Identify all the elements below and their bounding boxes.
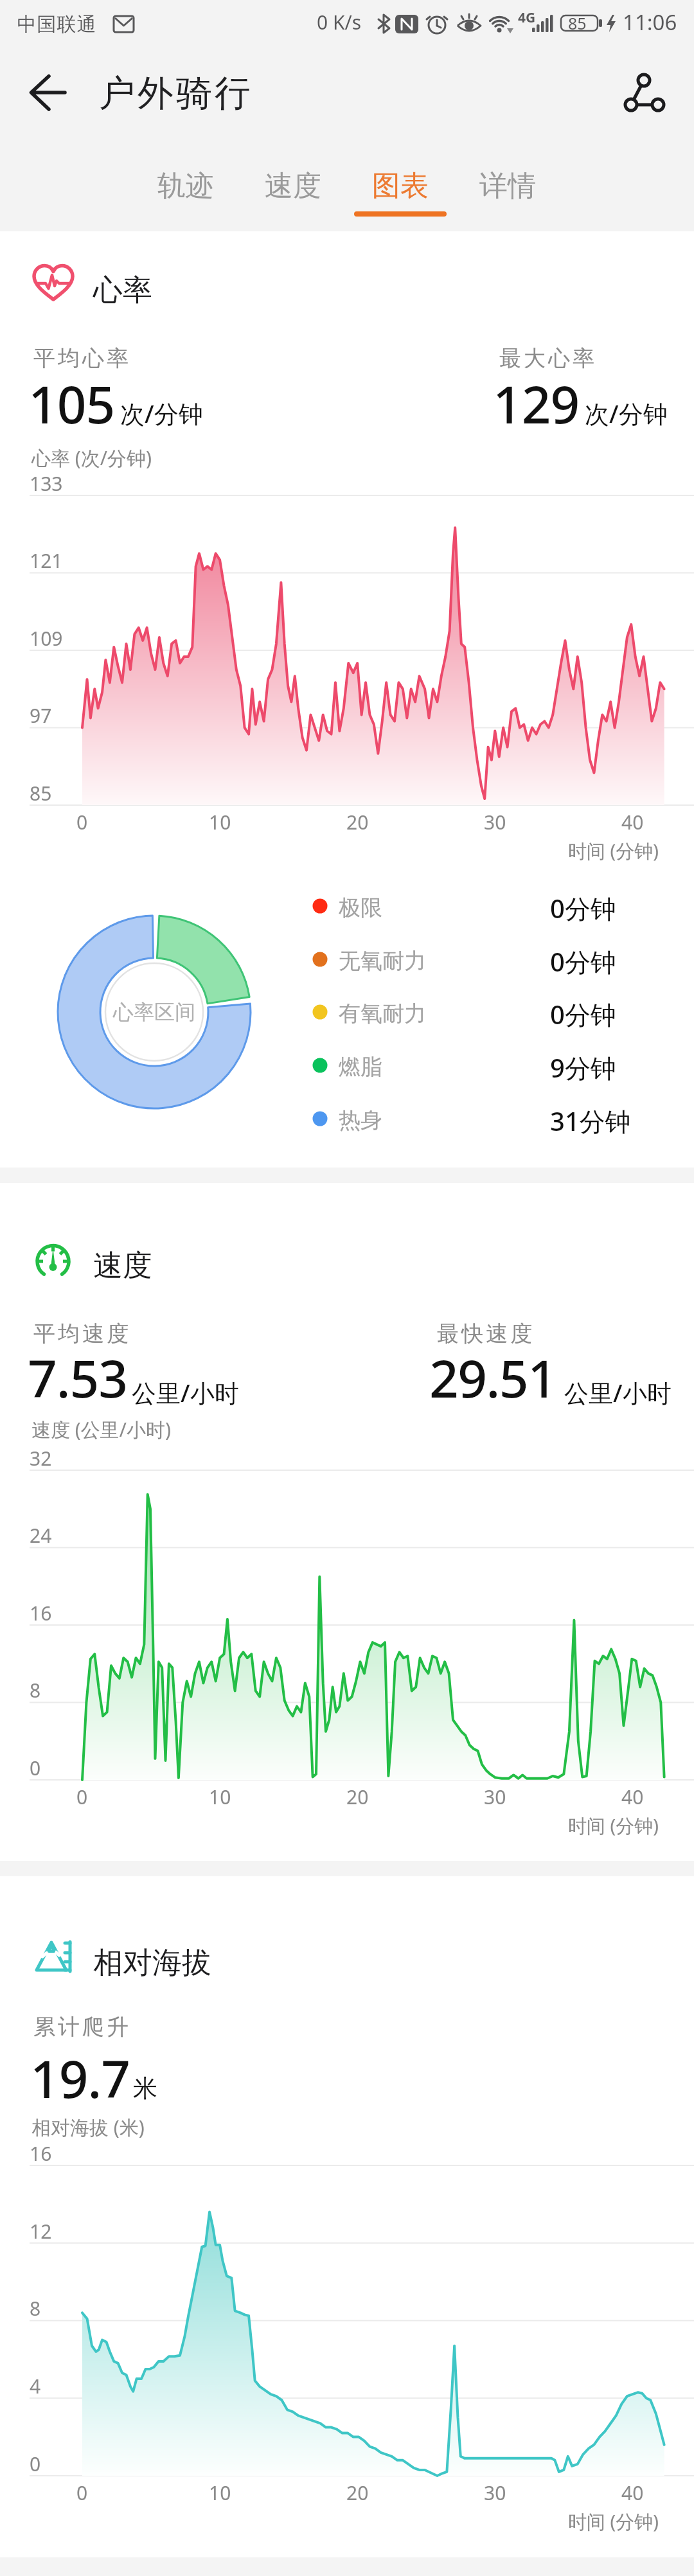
staticText: 0 (76, 809, 88, 835)
staticText: 10 (209, 809, 231, 835)
staticText: 31分钟 (550, 1103, 631, 1139)
staticText: 时间 (分钟) (568, 2509, 659, 2534)
staticText: 心率区间 (113, 999, 195, 1025)
staticText: 相对海拔 (93, 1944, 211, 1982)
staticText: 20 (346, 1784, 369, 1810)
staticText: 次/分钟 (585, 396, 668, 430)
staticText: 10 (209, 2480, 231, 2506)
staticText: 121 (30, 547, 63, 574)
button[interactable]: 详情 (454, 161, 561, 225)
staticText: 109 (30, 625, 63, 652)
staticText: 有氧耐力 (339, 1000, 426, 1027)
staticText: 19.7 (30, 2043, 130, 2113)
staticText: 16 (30, 2140, 52, 2167)
staticText: 40 (621, 809, 644, 835)
staticText: 30 (484, 809, 506, 835)
staticText: 20 (346, 2480, 369, 2506)
staticText: 详情 (479, 168, 536, 204)
staticText: 12 (30, 2218, 52, 2244)
staticText: 速度 (265, 168, 321, 204)
staticText: 速度 (公里/小时) (31, 1416, 171, 1443)
staticText: 轨迹 (157, 168, 214, 204)
staticText: 中国联通 (17, 12, 96, 37)
staticText: 公里/小时 (564, 1376, 672, 1409)
staticText: 16 (30, 1600, 52, 1626)
staticText: 40 (621, 1784, 644, 1810)
staticText: 4 (30, 2373, 41, 2399)
staticText: 11:06 (623, 8, 677, 37)
staticText: 相对海拔 (米) (31, 2114, 145, 2140)
staticText: 时间 (分钟) (568, 1813, 659, 1838)
staticText: 8 (30, 1677, 41, 1703)
staticText: 10 (209, 1784, 231, 1810)
staticText: 平均速度 (32, 1320, 130, 1347)
staticText: 30 (484, 1784, 506, 1810)
staticText: 次/分钟 (120, 396, 203, 430)
button[interactable] (19, 68, 63, 112)
staticText: 4G (518, 8, 536, 27)
staticText: 30 (484, 2480, 506, 2506)
staticText: 燃脂 (339, 1053, 382, 1081)
staticText: 40 (621, 2480, 644, 2506)
staticText: 图表 (372, 168, 429, 204)
button[interactable]: 速度 (239, 161, 346, 225)
staticText: 0 (76, 2480, 88, 2506)
staticText: 心率 (次/分钟) (31, 445, 152, 471)
staticText: 9分钟 (550, 1050, 616, 1085)
staticText: 7.53 (28, 1342, 128, 1412)
button[interactable] (617, 71, 667, 121)
staticText: 速度 (93, 1247, 152, 1284)
button[interactable]: 图表 (346, 161, 454, 225)
staticText: 0 (30, 2451, 41, 2477)
staticText: 最大心率 (498, 344, 596, 372)
staticText: 29.51 (429, 1342, 556, 1412)
staticText: 133 (30, 470, 63, 497)
staticText: 0分钟 (550, 944, 616, 979)
staticText: 32 (30, 1445, 52, 1471)
staticText: 极限 (339, 894, 382, 921)
staticText: 24 (30, 1522, 52, 1549)
staticText: 户外骑行 (98, 71, 252, 116)
staticText: 85 (568, 12, 587, 34)
staticText: 热身 (339, 1106, 382, 1134)
staticText: 105 (28, 368, 115, 438)
staticText: 0分钟 (550, 997, 616, 1032)
button[interactable]: 轨迹 (132, 161, 239, 225)
staticText: 0 (30, 1755, 41, 1781)
staticText: 平均心率 (32, 344, 130, 372)
staticText: 无氧耐力 (339, 947, 426, 975)
staticText: 累计爬升 (32, 2013, 130, 2041)
staticText: 公里/小时 (132, 1376, 239, 1409)
staticText: 米 (133, 2073, 157, 2104)
staticText: 20 (346, 809, 369, 835)
staticText: 8 (30, 2295, 41, 2322)
staticText: 85 (30, 780, 52, 806)
staticText: 129 (493, 368, 580, 438)
staticText: 时间 (分钟) (568, 838, 659, 864)
staticText: 0 (76, 1784, 88, 1810)
staticText: 97 (30, 702, 52, 729)
staticText: 0分钟 (550, 891, 616, 926)
staticText: 0 K/s (317, 9, 362, 35)
staticText: 最快速度 (436, 1320, 533, 1347)
staticText: 心率 (93, 272, 152, 309)
